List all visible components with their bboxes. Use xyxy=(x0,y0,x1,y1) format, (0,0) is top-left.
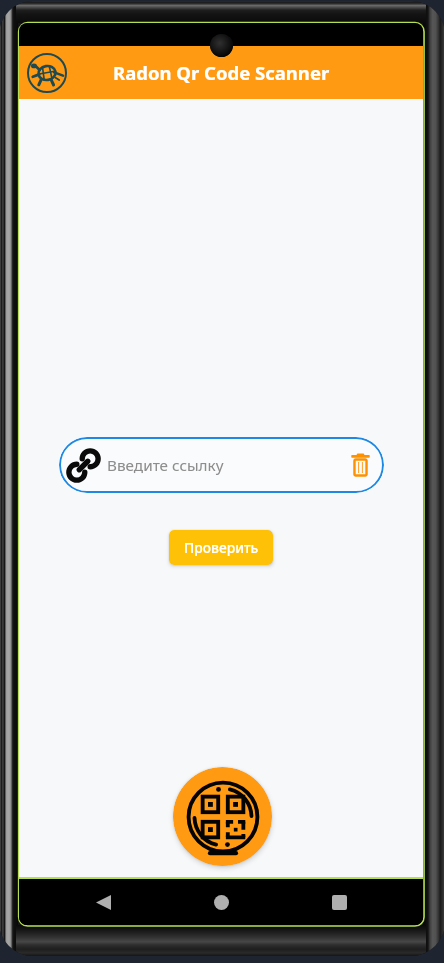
button[interactable]: Home xyxy=(204,885,238,919)
button[interactable]: Back xyxy=(86,885,120,919)
button[interactable]: Введите ссылку xyxy=(59,437,384,493)
button[interactable]: Recent apps xyxy=(322,885,356,919)
button[interactable]: Проверить xyxy=(169,530,273,565)
button[interactable]: App logo xyxy=(24,50,70,96)
staticText: Radon Qr Code Scanner xyxy=(113,60,330,85)
staticText: Введите ссылку xyxy=(107,455,224,476)
button[interactable]: Scan QR code xyxy=(173,767,272,866)
staticText: Проверить xyxy=(184,538,259,557)
button[interactable]: Clear xyxy=(340,445,380,485)
